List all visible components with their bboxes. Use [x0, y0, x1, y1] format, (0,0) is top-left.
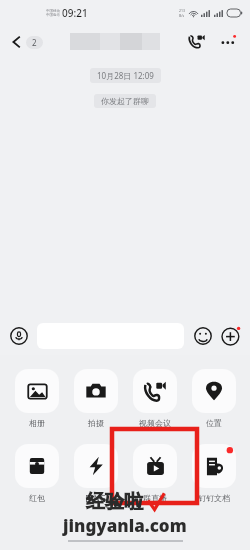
staticText: 经验啦	[86, 490, 143, 514]
button[interactable]: Back, 2 unread	[10, 32, 45, 52]
staticText: 213	[179, 8, 186, 13]
button[interactable]: Emoji	[192, 325, 214, 347]
staticText: jingyanla.com	[63, 514, 187, 537]
button[interactable]: 位置	[187, 369, 240, 428]
button[interactable]: 相册	[10, 369, 63, 428]
button[interactable]: 视频会议	[128, 369, 181, 428]
button[interactable]: 拍摄	[69, 369, 122, 428]
button[interactable]: DING	[69, 444, 122, 504]
staticText: 红包	[29, 493, 45, 503]
button[interactable]: More options	[217, 31, 240, 52]
staticText: 相册	[29, 418, 45, 428]
staticText: B/s	[179, 13, 185, 18]
button[interactable]: 群直播	[128, 444, 181, 503]
staticText: 中国移动	[46, 9, 60, 13]
button[interactable]: 红包	[10, 444, 63, 503]
staticText: 钉钉文档	[198, 493, 230, 503]
staticText: 视频会议	[139, 418, 171, 428]
staticText: DING	[85, 493, 106, 504]
button[interactable]: 钉钉文档	[187, 444, 240, 503]
staticText: 位置	[206, 418, 222, 428]
staticText: 2	[32, 37, 37, 48]
staticText: 中国电信	[46, 13, 60, 17]
staticText: 拍摄	[88, 418, 104, 428]
staticText: 09:21	[62, 6, 88, 20]
staticText: 10月28日 12:09	[97, 70, 154, 81]
staticText: 你发起了群聊	[101, 96, 149, 106]
button[interactable]: Video call	[185, 31, 208, 52]
button[interactable]: Voice message	[8, 325, 30, 347]
staticText: 群直播	[143, 493, 167, 503]
button[interactable]: More actions	[220, 325, 242, 347]
